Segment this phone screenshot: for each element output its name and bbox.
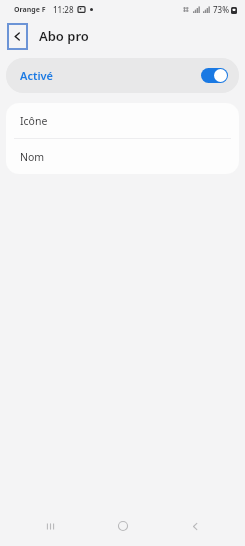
staticText: Orange F xyxy=(14,5,46,15)
staticText: Abo pro xyxy=(39,27,89,45)
button[interactable]: Nom xyxy=(6,139,239,174)
staticText: 11:28 xyxy=(53,4,74,15)
button[interactable]: Activé toggle xyxy=(201,68,228,83)
staticText: Nom xyxy=(20,150,45,164)
button[interactable]: Back xyxy=(173,506,217,546)
button[interactable]: Home xyxy=(101,506,145,546)
button[interactable]: Icône xyxy=(6,103,239,138)
staticText: Activé xyxy=(20,68,53,83)
staticText: 73% xyxy=(213,4,229,15)
staticText: Icône xyxy=(20,114,48,128)
button[interactable]: Recents xyxy=(28,506,72,546)
button[interactable]: Activé xyxy=(6,58,239,93)
button[interactable]: Back xyxy=(7,23,28,50)
